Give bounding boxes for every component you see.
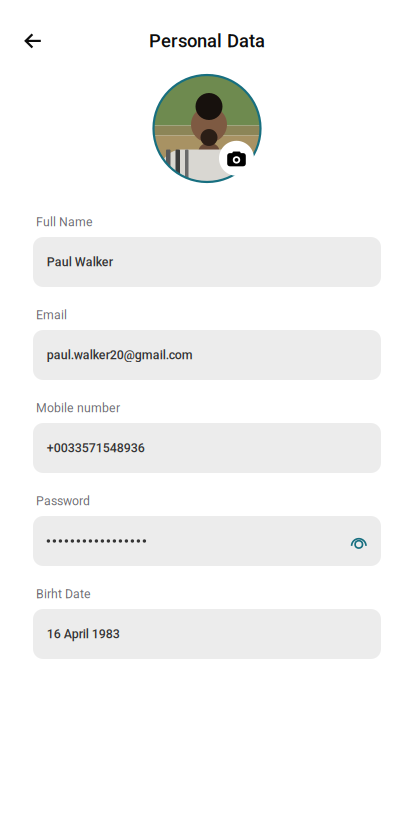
button[interactable]: +0033571548936: [33, 423, 381, 473]
staticText: Email: [36, 308, 67, 322]
staticText: Birht Date: [36, 587, 91, 601]
button[interactable]: Back: [12, 20, 54, 62]
staticText: Paul Walker: [47, 255, 113, 269]
button[interactable]: Paul Walker: [33, 237, 381, 287]
button[interactable]: [33, 516, 381, 566]
staticText: Mobile number: [36, 401, 120, 415]
staticText: 16 April 1983: [47, 627, 120, 641]
staticText: Personal Data: [149, 30, 265, 52]
staticText: paul.walker20@gmail.com: [47, 348, 193, 362]
button[interactable]: 16 April 1983: [33, 609, 381, 659]
staticText: Full Name: [36, 215, 93, 229]
button[interactable]: Show password: [350, 532, 367, 549]
button[interactable]: Change profile photo: [219, 141, 254, 176]
staticText: +0033571548936: [47, 441, 145, 455]
staticText: Password: [36, 494, 90, 508]
button[interactable]: paul.walker20@gmail.com: [33, 330, 381, 380]
